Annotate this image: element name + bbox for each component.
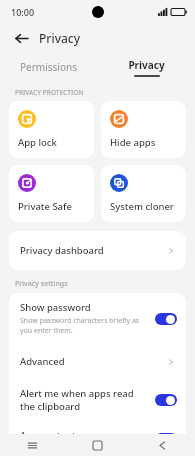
button[interactable]: Privacy (97, 52, 195, 82)
staticText: Alert me when apps read the clipboard (20, 387, 149, 413)
button[interactable]: Private Safe (9, 165, 94, 222)
button[interactable]: Show password (9, 293, 186, 344)
button[interactable]: Back (11, 28, 31, 48)
button[interactable]: Hide apps (101, 101, 186, 158)
staticText: Show password (20, 301, 91, 314)
button[interactable]: System cloner (101, 165, 186, 222)
button[interactable]: Advanced (9, 344, 186, 379)
staticText: Privacy settings (15, 279, 68, 289)
staticText: 10:00 (11, 6, 35, 18)
staticText: Permissions (20, 60, 77, 74)
button[interactable]: Alert me when apps read the clipboard (9, 379, 186, 421)
staticText: Allow apps to send content to the Androi… (20, 444, 149, 448)
staticText: Privacy (128, 58, 165, 72)
button[interactable]: Privacy dashboard (9, 231, 186, 270)
staticText: Private Safe (18, 200, 72, 213)
button[interactable]: Toggle on (155, 394, 177, 406)
staticText: System cloner (110, 200, 174, 213)
staticText: App lock (18, 136, 57, 149)
button[interactable]: Home (65, 434, 130, 456)
staticText: PRIVACY PROTECTION (15, 88, 84, 97)
button[interactable]: Permissions (0, 52, 97, 82)
staticText: Privacy dashboard (20, 244, 167, 257)
staticText: Show password characters briefly as you … (20, 316, 149, 336)
button[interactable]: Recents (0, 434, 65, 456)
button[interactable]: App lock (9, 101, 94, 158)
button[interactable]: App content (9, 421, 186, 456)
staticText: Privacy (39, 30, 81, 46)
button[interactable]: Toggle on (155, 433, 177, 445)
button[interactable]: Back (130, 434, 195, 456)
staticText: Advanced (20, 355, 167, 368)
button[interactable]: Toggle on (155, 313, 177, 325)
staticText: Hide apps (110, 136, 156, 149)
staticText: App content (20, 429, 76, 442)
